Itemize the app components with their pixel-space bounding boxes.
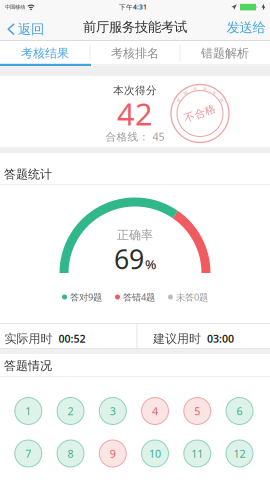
staticText: 正确率 xyxy=(117,228,153,242)
staticText: 技 xyxy=(177,98,181,103)
staticText: 答题情况 xyxy=(4,358,52,373)
staticText: 12 xyxy=(233,446,245,461)
staticText: 能 xyxy=(184,90,188,95)
staticText: 4 xyxy=(152,404,158,418)
staticText: 5 xyxy=(194,404,200,418)
staticText: 答对9题 xyxy=(70,291,102,303)
staticText: 10 xyxy=(149,446,161,461)
staticText: 错题解析 xyxy=(201,46,249,61)
staticText: 69 xyxy=(114,241,144,277)
staticText: 1 xyxy=(25,404,31,418)
staticText: 9 xyxy=(110,446,116,461)
staticText: 核 xyxy=(203,87,207,91)
staticText: 下午4:31 xyxy=(119,3,147,11)
staticText: 11 xyxy=(191,446,203,461)
staticText: 建议用时 xyxy=(153,331,201,346)
staticText: 3 xyxy=(110,404,116,418)
staticText: % xyxy=(145,255,156,273)
staticText: 答题统计 xyxy=(4,167,52,182)
staticText: 未答0题 xyxy=(176,291,208,303)
staticText: 不合格 xyxy=(183,107,216,120)
staticText: 8 xyxy=(67,446,73,461)
staticText: 2 xyxy=(67,404,73,418)
staticText: 本次得分 xyxy=(113,84,157,97)
staticText: 答错4题 xyxy=(123,291,155,303)
staticText: 考核结果 xyxy=(21,46,69,61)
staticText: 合格线： 45 xyxy=(105,129,164,144)
staticText: 考核排名 xyxy=(111,46,159,61)
staticText: 前厅服务技能考试 xyxy=(83,19,187,35)
staticText: 中国移动 xyxy=(5,4,25,10)
staticText: 00:52 xyxy=(58,332,85,346)
staticText: 专 xyxy=(212,90,216,95)
staticText: 42 xyxy=(117,93,153,134)
staticText: 6 xyxy=(236,404,242,418)
staticText: 用 xyxy=(219,98,223,103)
staticText: 实际用时 xyxy=(4,331,52,346)
staticText: 考 xyxy=(193,87,197,91)
staticText: 7 xyxy=(25,446,31,461)
staticText: 03:00 xyxy=(207,332,234,346)
staticText: 返回 xyxy=(18,21,44,37)
staticText: 发送给 xyxy=(226,19,265,36)
